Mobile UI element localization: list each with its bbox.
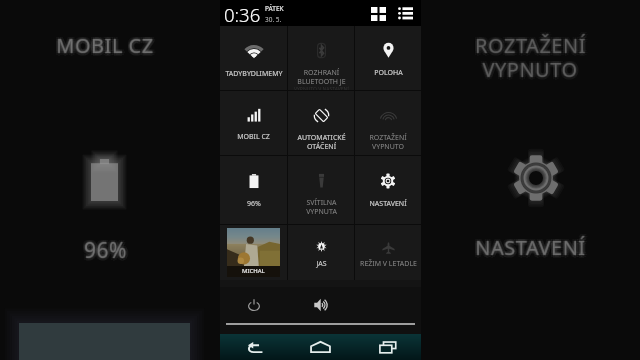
staticText: ROZHRANÍ BLUETOOTH JE [297, 68, 346, 86]
staticText: ROZTAŽENÍ VYPNUTO [369, 133, 407, 151]
staticText: NASTAVENÍ [475, 234, 586, 261]
button[interactable]: Volume [287, 287, 354, 323]
staticText: SVÍTILNA VYPNUTA [306, 198, 337, 216]
staticText: MOBIL CZ [55, 32, 153, 59]
staticText: REŽIM V LETADLE [360, 259, 417, 269]
staticText: MOBIL CZ [56, 31, 154, 58]
staticText: ROZTAŽENÍ [478, 32, 589, 59]
staticText: ROZTAŽENÍ [476, 32, 587, 59]
staticText: NASTAVENÍ [475, 235, 586, 262]
button[interactable]: POLOHA [355, 26, 421, 90]
button[interactable]: MOBIL CZ [220, 91, 287, 155]
staticText: ROZTAŽENÍ [475, 30, 586, 57]
staticText: MOBIL CZ [56, 30, 154, 57]
staticText: VYPNUTO [482, 57, 578, 84]
staticText: VYPNUTO [481, 56, 577, 83]
staticText: ROZTAŽENÍ [477, 34, 588, 61]
button[interactable]: ROZHRANÍ BLUETOOTH JE [288, 26, 354, 90]
staticText: NASTAVENÍ [476, 234, 587, 261]
staticText: VYPNUTO [482, 55, 578, 82]
staticText: MOBIL CZ [54, 34, 152, 61]
button[interactable]: MICHAL [220, 225, 287, 280]
button[interactable]: 96% [220, 156, 287, 224]
staticText: NASTAVENÍ [477, 236, 588, 263]
staticText: 0:36 [224, 2, 261, 27]
staticText: ROZTAŽENÍ [473, 30, 584, 57]
staticText: POLOHA [374, 68, 403, 78]
button[interactable]: Back [220, 334, 287, 360]
staticText: NASTAVENÍ [369, 199, 407, 209]
staticText: PÁTEK [265, 4, 284, 13]
button[interactable]: Recents [354, 334, 421, 360]
staticText: VYPNUTO [485, 56, 581, 83]
staticText: ROZTAŽENÍ [475, 35, 586, 62]
staticText: MOBIL CZ [56, 35, 154, 62]
staticText: VYPNUTO [482, 59, 578, 86]
staticText: NASTAVENÍ [473, 232, 584, 259]
staticText: NASTAVENÍ [474, 234, 585, 261]
staticText: MOBIL CZ [58, 30, 156, 57]
button[interactable]: SVÍTILNA VYPNUTA [288, 156, 354, 224]
staticText: 96% [82, 234, 125, 263]
staticText: MOBIL CZ [54, 32, 152, 59]
button[interactable]: JAS [288, 225, 354, 280]
staticText: 96% [247, 199, 261, 209]
button[interactable]: NASTAVENÍ [355, 156, 421, 224]
button[interactable]: TADYBYDLIMEMY [220, 26, 287, 90]
staticText: 96% [86, 234, 129, 263]
staticText: ROZTAŽENÍ [475, 32, 586, 59]
button[interactable]: Power [220, 287, 287, 323]
staticText: 96% [83, 236, 126, 265]
button[interactable]: ROZTAŽENÍ VYPNUTO [355, 91, 421, 155]
button[interactable]: AUTOMATICKÉ OTÁČENÍ [288, 91, 354, 155]
staticText: 96% [87, 236, 130, 265]
staticText: VYPNUTO [482, 56, 578, 83]
staticText: NASTAVENÍ [475, 233, 586, 260]
staticText: 96% [85, 236, 128, 265]
staticText: MOBIL CZ [56, 32, 154, 59]
staticText: NASTAVENÍ [475, 237, 586, 264]
staticText: NASTAVENÍ [477, 232, 588, 259]
button[interactable]: Home [287, 334, 354, 360]
staticText: ROZTAŽENÍ [475, 31, 586, 58]
staticText: VYPNUTO [482, 54, 578, 81]
staticText: TADYBYDLIMEMY [225, 69, 283, 79]
button[interactable]: REŽIM V LETADLE [355, 225, 421, 280]
button[interactable]: Grid view [368, 3, 389, 24]
staticText: VYPNUTO V NASTAVENÍ [294, 86, 349, 90]
staticText: MICHAL [242, 267, 265, 275]
staticText: VYPNUTO [483, 56, 579, 83]
staticText: VYPNUTO [480, 54, 576, 81]
staticText: ROZTAŽENÍ [474, 32, 585, 59]
staticText: NASTAVENÍ [473, 236, 584, 263]
staticText: NASTAVENÍ [475, 232, 586, 259]
staticText: 96% [84, 235, 127, 264]
staticText: 96% [82, 236, 125, 265]
staticText: NASTAVENÍ [478, 234, 589, 261]
staticText: MOBIL CZ [59, 32, 157, 59]
staticText: 96% [84, 237, 127, 266]
staticText: VYPNUTO [480, 56, 576, 83]
staticText: VYPNUTO [484, 58, 580, 85]
staticText: ROZTAŽENÍ [473, 32, 584, 59]
staticText: MOBIL CZ [58, 34, 156, 61]
staticText: 96% [84, 234, 127, 263]
button[interactable]: List view [395, 3, 416, 24]
staticText: 96% [84, 239, 127, 268]
staticText: MOBIL CZ [57, 32, 155, 59]
staticText: 96% [86, 238, 129, 267]
staticText: VYPNUTO [484, 54, 580, 81]
staticText: 30. 5. [265, 15, 282, 24]
staticText: 96% [84, 236, 127, 265]
staticText: JAS [316, 259, 327, 269]
staticText: ROZTAŽENÍ [475, 33, 586, 60]
staticText: MOBIL CZ [54, 30, 152, 57]
staticText: VYPNUTO [480, 58, 576, 85]
staticText: ROZTAŽENÍ [477, 30, 588, 57]
staticText: MOBIL CZ [237, 132, 270, 142]
staticText: 96% [82, 238, 125, 267]
staticText: ROZTAŽENÍ [473, 34, 584, 61]
staticText: NASTAVENÍ [473, 234, 584, 261]
staticText: AUTOMATICKÉ OTÁČENÍ [297, 133, 346, 151]
staticText: MOBIL CZ [56, 33, 154, 60]
